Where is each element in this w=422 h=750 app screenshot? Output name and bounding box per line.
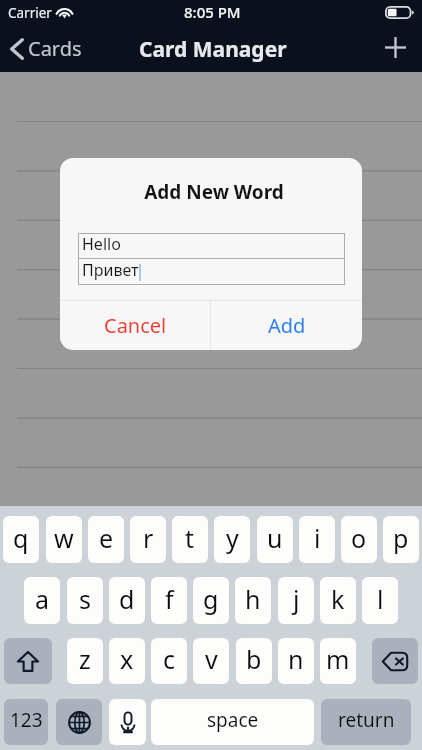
button[interactable]: d (109, 577, 145, 624)
staticText: i (314, 521, 321, 555)
button[interactable]: l (362, 577, 398, 624)
button[interactable]: a (24, 577, 60, 624)
button[interactable]: u (257, 516, 293, 563)
staticText: c (163, 642, 176, 676)
staticText: s (79, 582, 91, 616)
staticText: Привет (82, 259, 139, 281)
button[interactable]: o (341, 516, 377, 563)
staticText: a (35, 582, 50, 616)
staticText: t (185, 521, 195, 555)
staticText: z (79, 642, 91, 676)
staticText: v (205, 642, 218, 676)
staticText: w (54, 521, 74, 555)
staticText: return (338, 707, 395, 733)
button[interactable]: Add (211, 301, 362, 350)
button[interactable]: r (130, 516, 166, 563)
staticText: b (246, 642, 262, 676)
staticText: n (288, 642, 304, 676)
staticText: Add (268, 312, 306, 339)
button[interactable]: p (383, 516, 419, 563)
staticText: x (120, 642, 134, 676)
button[interactable]: space (151, 699, 314, 745)
button[interactable]: k (320, 577, 356, 624)
button[interactable]: Cancel (60, 301, 210, 350)
button[interactable]: b (236, 638, 272, 684)
button[interactable]: 123 (4, 699, 48, 745)
button[interactable]: v (193, 638, 229, 684)
button[interactable]: g (193, 577, 229, 624)
button[interactable]: s (67, 577, 103, 624)
staticText: f (165, 582, 174, 616)
button[interactable]: Next keyboard (56, 699, 102, 745)
button[interactable]: f (151, 577, 187, 624)
button[interactable]: x (109, 638, 145, 684)
staticText: p (393, 521, 409, 555)
staticText: l (377, 582, 384, 616)
staticText: u (267, 521, 283, 555)
staticText: j (293, 582, 300, 616)
staticText: g (203, 582, 219, 616)
staticText: e (99, 521, 114, 555)
button[interactable]: t (172, 516, 208, 563)
staticText: h (245, 582, 261, 616)
staticText: space (207, 707, 259, 733)
staticText: Add New Word (63, 179, 362, 205)
button[interactable]: z (67, 638, 103, 684)
button[interactable]: Shift (4, 638, 52, 684)
staticText: d (119, 582, 135, 616)
button[interactable]: q (3, 516, 39, 563)
button[interactable]: Cards (0, 35, 92, 62)
staticText: y (226, 521, 239, 555)
staticText: r (143, 521, 154, 555)
button[interactable]: Add (370, 28, 422, 72)
button[interactable]: Dictate (109, 699, 146, 745)
button[interactable]: Backspace (372, 638, 418, 684)
staticText: m (326, 642, 350, 676)
button[interactable]: e (88, 516, 124, 563)
button[interactable]: y (214, 516, 250, 563)
button[interactable]: w (46, 516, 82, 563)
button[interactable]: n (278, 638, 314, 684)
button[interactable]: i (299, 516, 335, 563)
button[interactable]: return (321, 699, 411, 745)
staticText: 8:05 PM (184, 2, 241, 22)
staticText: Carrier (8, 4, 52, 22)
button[interactable]: h (235, 577, 271, 624)
staticText: o (351, 521, 367, 555)
button[interactable]: c (151, 638, 187, 684)
button[interactable]: j (278, 577, 314, 624)
staticText: Card Manager (139, 35, 287, 64)
staticText: 123 (10, 707, 43, 733)
staticText: k (331, 582, 345, 616)
staticText: q (13, 521, 29, 555)
button[interactable]: m (320, 638, 356, 684)
staticText: Cancel (104, 312, 167, 339)
staticText: Hello (82, 233, 121, 255)
staticText: Cards (28, 35, 82, 62)
